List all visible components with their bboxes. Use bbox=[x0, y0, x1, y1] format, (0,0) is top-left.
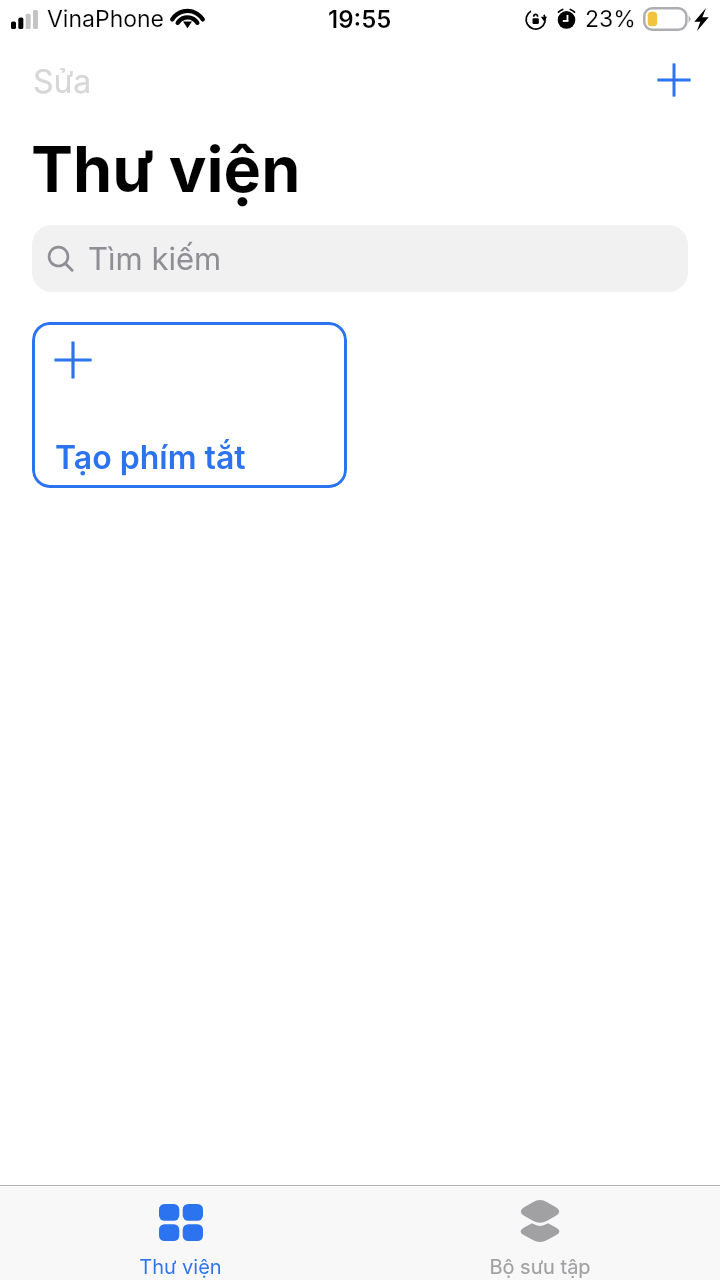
staticText: VinaPhone bbox=[47, 5, 165, 33]
staticText: 23% bbox=[585, 5, 636, 33]
staticText: Tìm kiếm bbox=[88, 240, 222, 278]
staticText: Thư viện bbox=[31, 131, 301, 207]
staticText: Bộ sưu tập bbox=[489, 1255, 591, 1279]
button[interactable]: Sửa bbox=[0, 52, 125, 110]
button[interactable]: Create shortcut bbox=[633, 53, 720, 107]
staticText: Thư viện bbox=[139, 1255, 222, 1279]
button[interactable]: Thư viện bbox=[115, 1187, 246, 1279]
staticText: Sửa bbox=[33, 62, 92, 100]
staticText: 19:55 bbox=[328, 5, 392, 34]
button[interactable]: Tạo phím tắt bbox=[32, 322, 347, 488]
button[interactable]: Bộ sưu tập bbox=[465, 1187, 615, 1279]
button[interactable]: Tìm kiếm bbox=[32, 225, 688, 292]
staticText: Tạo phím tắt bbox=[55, 438, 246, 477]
